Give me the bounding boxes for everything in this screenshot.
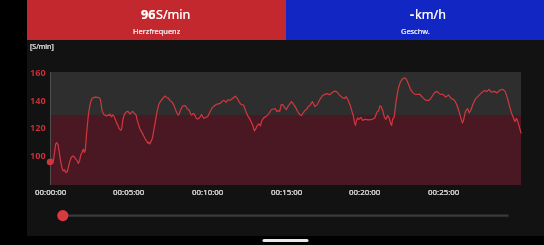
staticText: 120 [30, 121, 46, 134]
staticText: 160 [30, 66, 46, 79]
staticText: 00:00:00 [35, 187, 67, 198]
staticText: [S/min] [30, 42, 54, 52]
staticText: S/min [156, 6, 191, 23]
staticText: 100 [30, 149, 46, 162]
staticText: km/h [415, 6, 446, 23]
button[interactable]: - [286, 0, 544, 40]
staticText: 140 [30, 94, 46, 107]
button[interactable]: 96 [27, 0, 286, 40]
staticText: 00:15:00 [271, 187, 303, 198]
staticText: 00:10:00 [192, 187, 224, 198]
staticText: 00:20:00 [349, 187, 381, 198]
staticText: Geschw. [401, 26, 430, 36]
staticText: 96 [141, 6, 156, 23]
staticText: Herzfrequenz [133, 26, 181, 36]
staticText: 00:25:00 [428, 187, 460, 198]
button[interactable]: Zeitachsen-Schieberegler [27, 203, 544, 229]
staticText: - [410, 6, 415, 23]
staticText: 00:05:00 [113, 187, 145, 198]
